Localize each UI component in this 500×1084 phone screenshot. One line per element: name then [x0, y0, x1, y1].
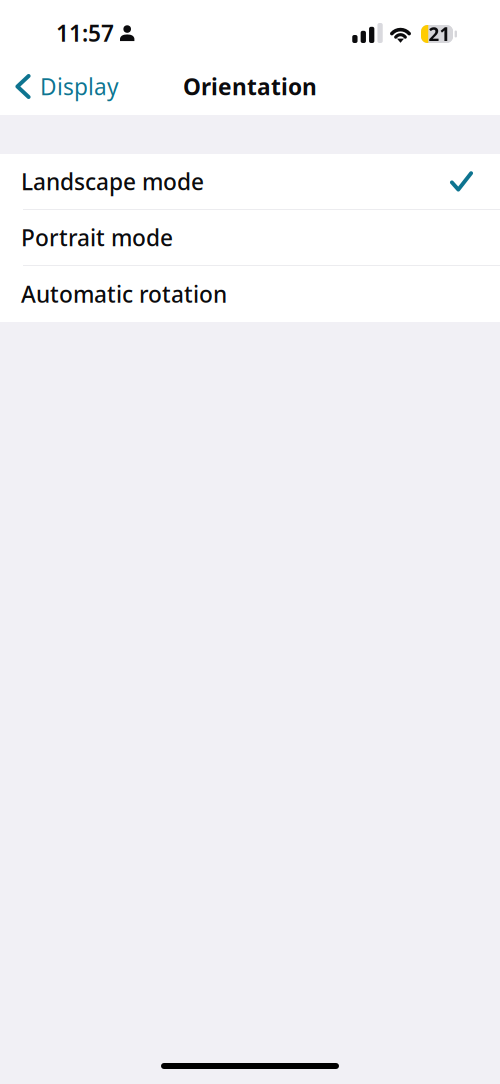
button[interactable]: Display	[0, 63, 119, 109]
staticText: Automatic rotation	[21, 279, 227, 309]
button[interactable]: Landscape mode	[0, 154, 500, 210]
button[interactable]: Automatic rotation	[0, 266, 500, 322]
staticText: Portrait mode	[21, 222, 173, 252]
button[interactable]: Portrait mode	[0, 210, 500, 266]
staticText: Orientation	[183, 71, 317, 101]
staticText: Display	[40, 71, 119, 101]
staticText: Landscape mode	[21, 166, 204, 196]
staticText: 21	[428, 22, 450, 46]
staticText: 11:57	[56, 18, 114, 48]
